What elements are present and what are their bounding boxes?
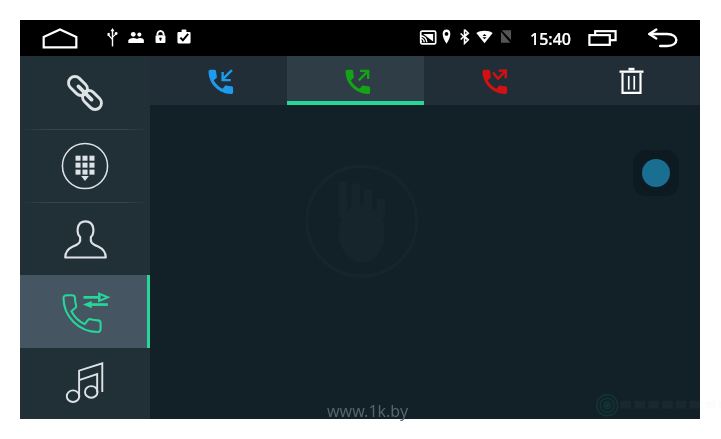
button[interactable]: Contacts bbox=[20, 202, 150, 275]
button[interactable]: Bluetooth link bbox=[20, 56, 150, 129]
button[interactable]: Dial pad bbox=[20, 129, 150, 202]
button[interactable]: Delete bbox=[562, 56, 700, 105]
button[interactable]: Missed calls bbox=[424, 56, 562, 105]
staticText: www.1k.by bbox=[327, 400, 409, 422]
button[interactable]: Outgoing calls bbox=[287, 56, 424, 105]
button[interactable]: Call history bbox=[20, 275, 150, 348]
staticText: 15:40 bbox=[530, 28, 571, 50]
button[interactable]: Incoming calls bbox=[150, 56, 287, 105]
button[interactable]: Music bbox=[20, 348, 150, 419]
